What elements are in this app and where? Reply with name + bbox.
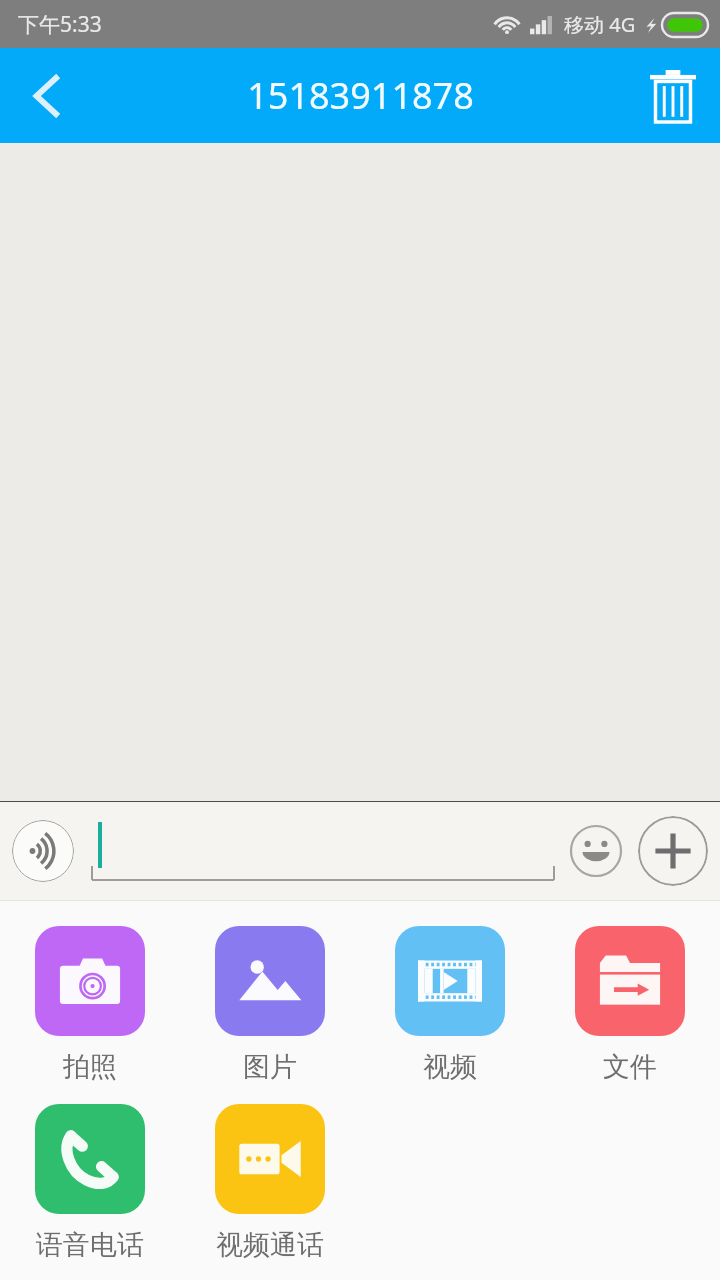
button[interactable]: Back <box>0 48 95 143</box>
staticText: 下午5:33 <box>18 10 102 39</box>
button[interactable]: Delete <box>625 48 720 143</box>
staticText: 语音电话 <box>36 1228 144 1262</box>
staticText: 移动 4G <box>564 11 636 38</box>
button[interactable]: Voice message <box>12 820 74 882</box>
button[interactable] <box>92 818 554 884</box>
staticText: 视频 <box>423 1050 477 1084</box>
staticText: 15183911878 <box>247 71 474 120</box>
button[interactable]: 视频 <box>395 926 505 1084</box>
button[interactable]: More options <box>638 816 708 886</box>
staticText: 文件 <box>603 1050 657 1084</box>
button[interactable]: 语音电话 <box>35 1104 145 1262</box>
staticText: 视频通话 <box>216 1228 324 1262</box>
button[interactable]: 视频通话 <box>215 1104 325 1262</box>
staticText: 图片 <box>243 1050 297 1084</box>
button[interactable]: 文件 <box>575 926 685 1084</box>
button[interactable]: Emoji <box>568 823 624 879</box>
button[interactable]: 图片 <box>215 926 325 1084</box>
staticText: 拍照 <box>63 1050 117 1084</box>
button[interactable]: 拍照 <box>35 926 145 1084</box>
